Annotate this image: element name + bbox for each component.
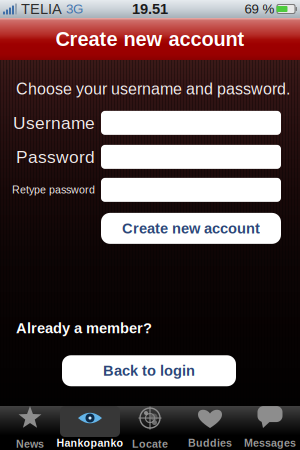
button[interactable]: Messages: [240, 406, 300, 450]
staticText: 69 %: [244, 2, 274, 16]
staticText: Retype password: [12, 184, 95, 196]
button[interactable]: Hankopanko: [60, 406, 120, 450]
button[interactable]: Back to login: [62, 355, 236, 386]
staticText: Create new account: [122, 220, 260, 237]
staticText: Password: [16, 147, 95, 167]
staticText: TELIA: [21, 1, 62, 17]
staticText: Buddies: [188, 437, 232, 449]
staticText: Back to login: [103, 363, 195, 379]
button[interactable]: News: [0, 406, 60, 450]
button[interactable]: Locate: [120, 406, 180, 450]
staticText: Choose your username and password.: [16, 80, 290, 98]
staticText: 3G: [66, 2, 83, 16]
staticText: Locate: [132, 438, 168, 450]
staticText: Messages: [244, 437, 296, 449]
staticText: Hankopanko: [56, 437, 123, 449]
staticText: Username: [13, 113, 95, 133]
staticText: News: [16, 438, 44, 450]
staticText: Already a member?: [16, 320, 152, 336]
staticText: Create new account: [55, 28, 244, 50]
button[interactable]: Buddies: [180, 406, 240, 450]
staticText: 19.51: [132, 1, 168, 17]
button[interactable]: Create new account: [101, 213, 281, 244]
